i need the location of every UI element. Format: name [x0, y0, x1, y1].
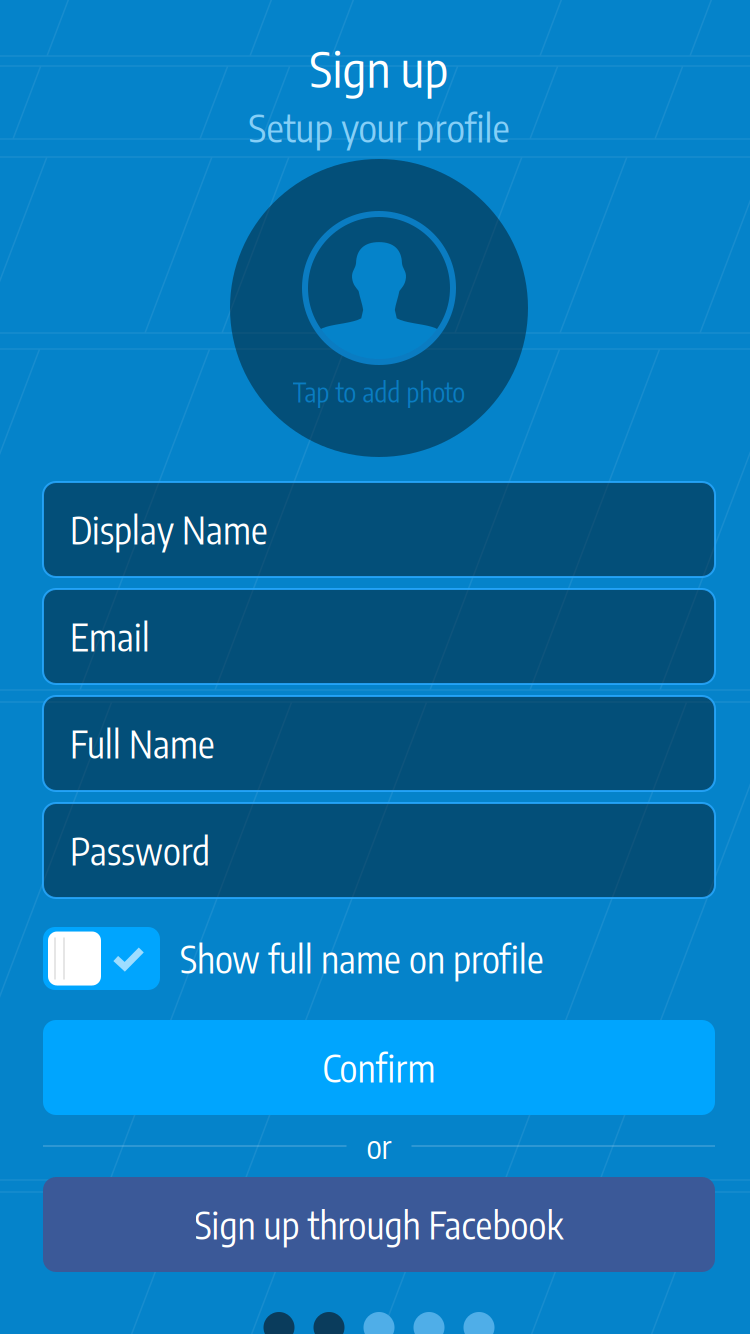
staticText: Setup your profile: [248, 103, 509, 151]
button[interactable]: Confirm: [43, 1020, 715, 1115]
button[interactable]: Email: [43, 589, 715, 684]
staticText: or: [366, 1126, 391, 1166]
button[interactable]: Password: [43, 803, 715, 898]
staticText: Full Name: [70, 720, 215, 767]
button[interactable]: Tap to add photo: [230, 159, 528, 457]
staticText: Show full name on profile: [180, 935, 544, 982]
button[interactable]: Sign up through Facebook: [43, 1177, 715, 1272]
staticText: Tap to add photo: [292, 375, 465, 408]
staticText: Confirm: [322, 1044, 435, 1091]
staticText: Email: [70, 613, 150, 660]
staticText: Display Name: [70, 506, 268, 553]
staticText: Sign up: [309, 37, 448, 99]
button[interactable]: Full Name: [43, 696, 715, 791]
staticText: Sign up through Facebook: [194, 1201, 563, 1248]
button[interactable]: Display Name: [43, 482, 715, 577]
button[interactable]: Show full name on profile: [43, 927, 160, 990]
staticText: Password: [70, 827, 210, 874]
